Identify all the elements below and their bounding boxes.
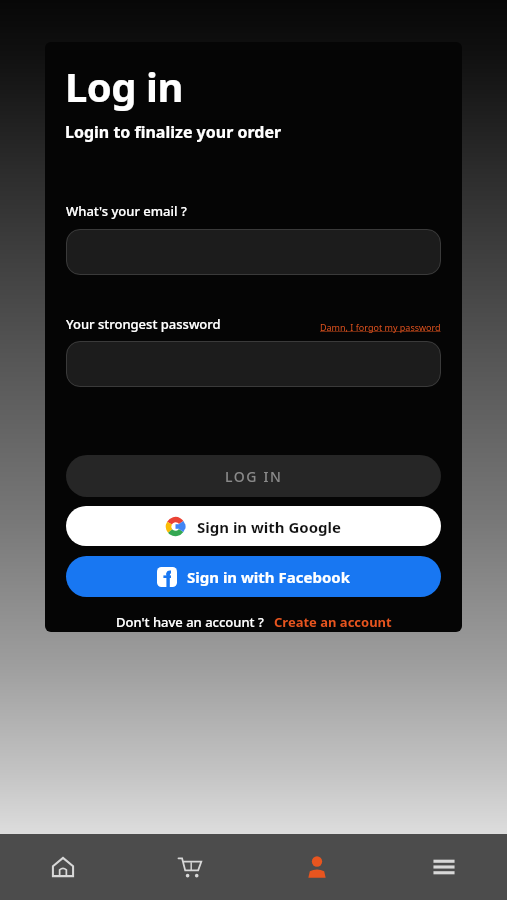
staticText: Damn, I forgot my password [320,321,441,333]
button[interactable]: Create an account [274,613,392,631]
button[interactable]: Sign in with Google [66,506,441,546]
button[interactable] [66,341,441,387]
staticText: Don't have an account ? [116,613,264,631]
button[interactable]: Sign in with Facebook [66,556,441,597]
button[interactable]: Menu [380,834,507,900]
staticText: What's your email ? [66,202,187,220]
staticText: Sign in with Google [197,517,342,537]
button[interactable]: Account [253,834,380,900]
staticText: Your strongest password [66,315,221,333]
button[interactable]: Cart [126,834,253,900]
button[interactable]: Home [0,834,126,900]
staticText: Log in [65,59,183,113]
staticText: Sign in with Facebook [187,567,350,587]
staticText: Create an account [274,613,392,631]
staticText: Login to finalize your order [65,121,282,143]
staticText: LOG IN [225,467,283,486]
button[interactable] [66,229,441,275]
button[interactable]: LOG IN [66,455,441,497]
button[interactable]: Damn, I forgot my password [320,321,441,333]
